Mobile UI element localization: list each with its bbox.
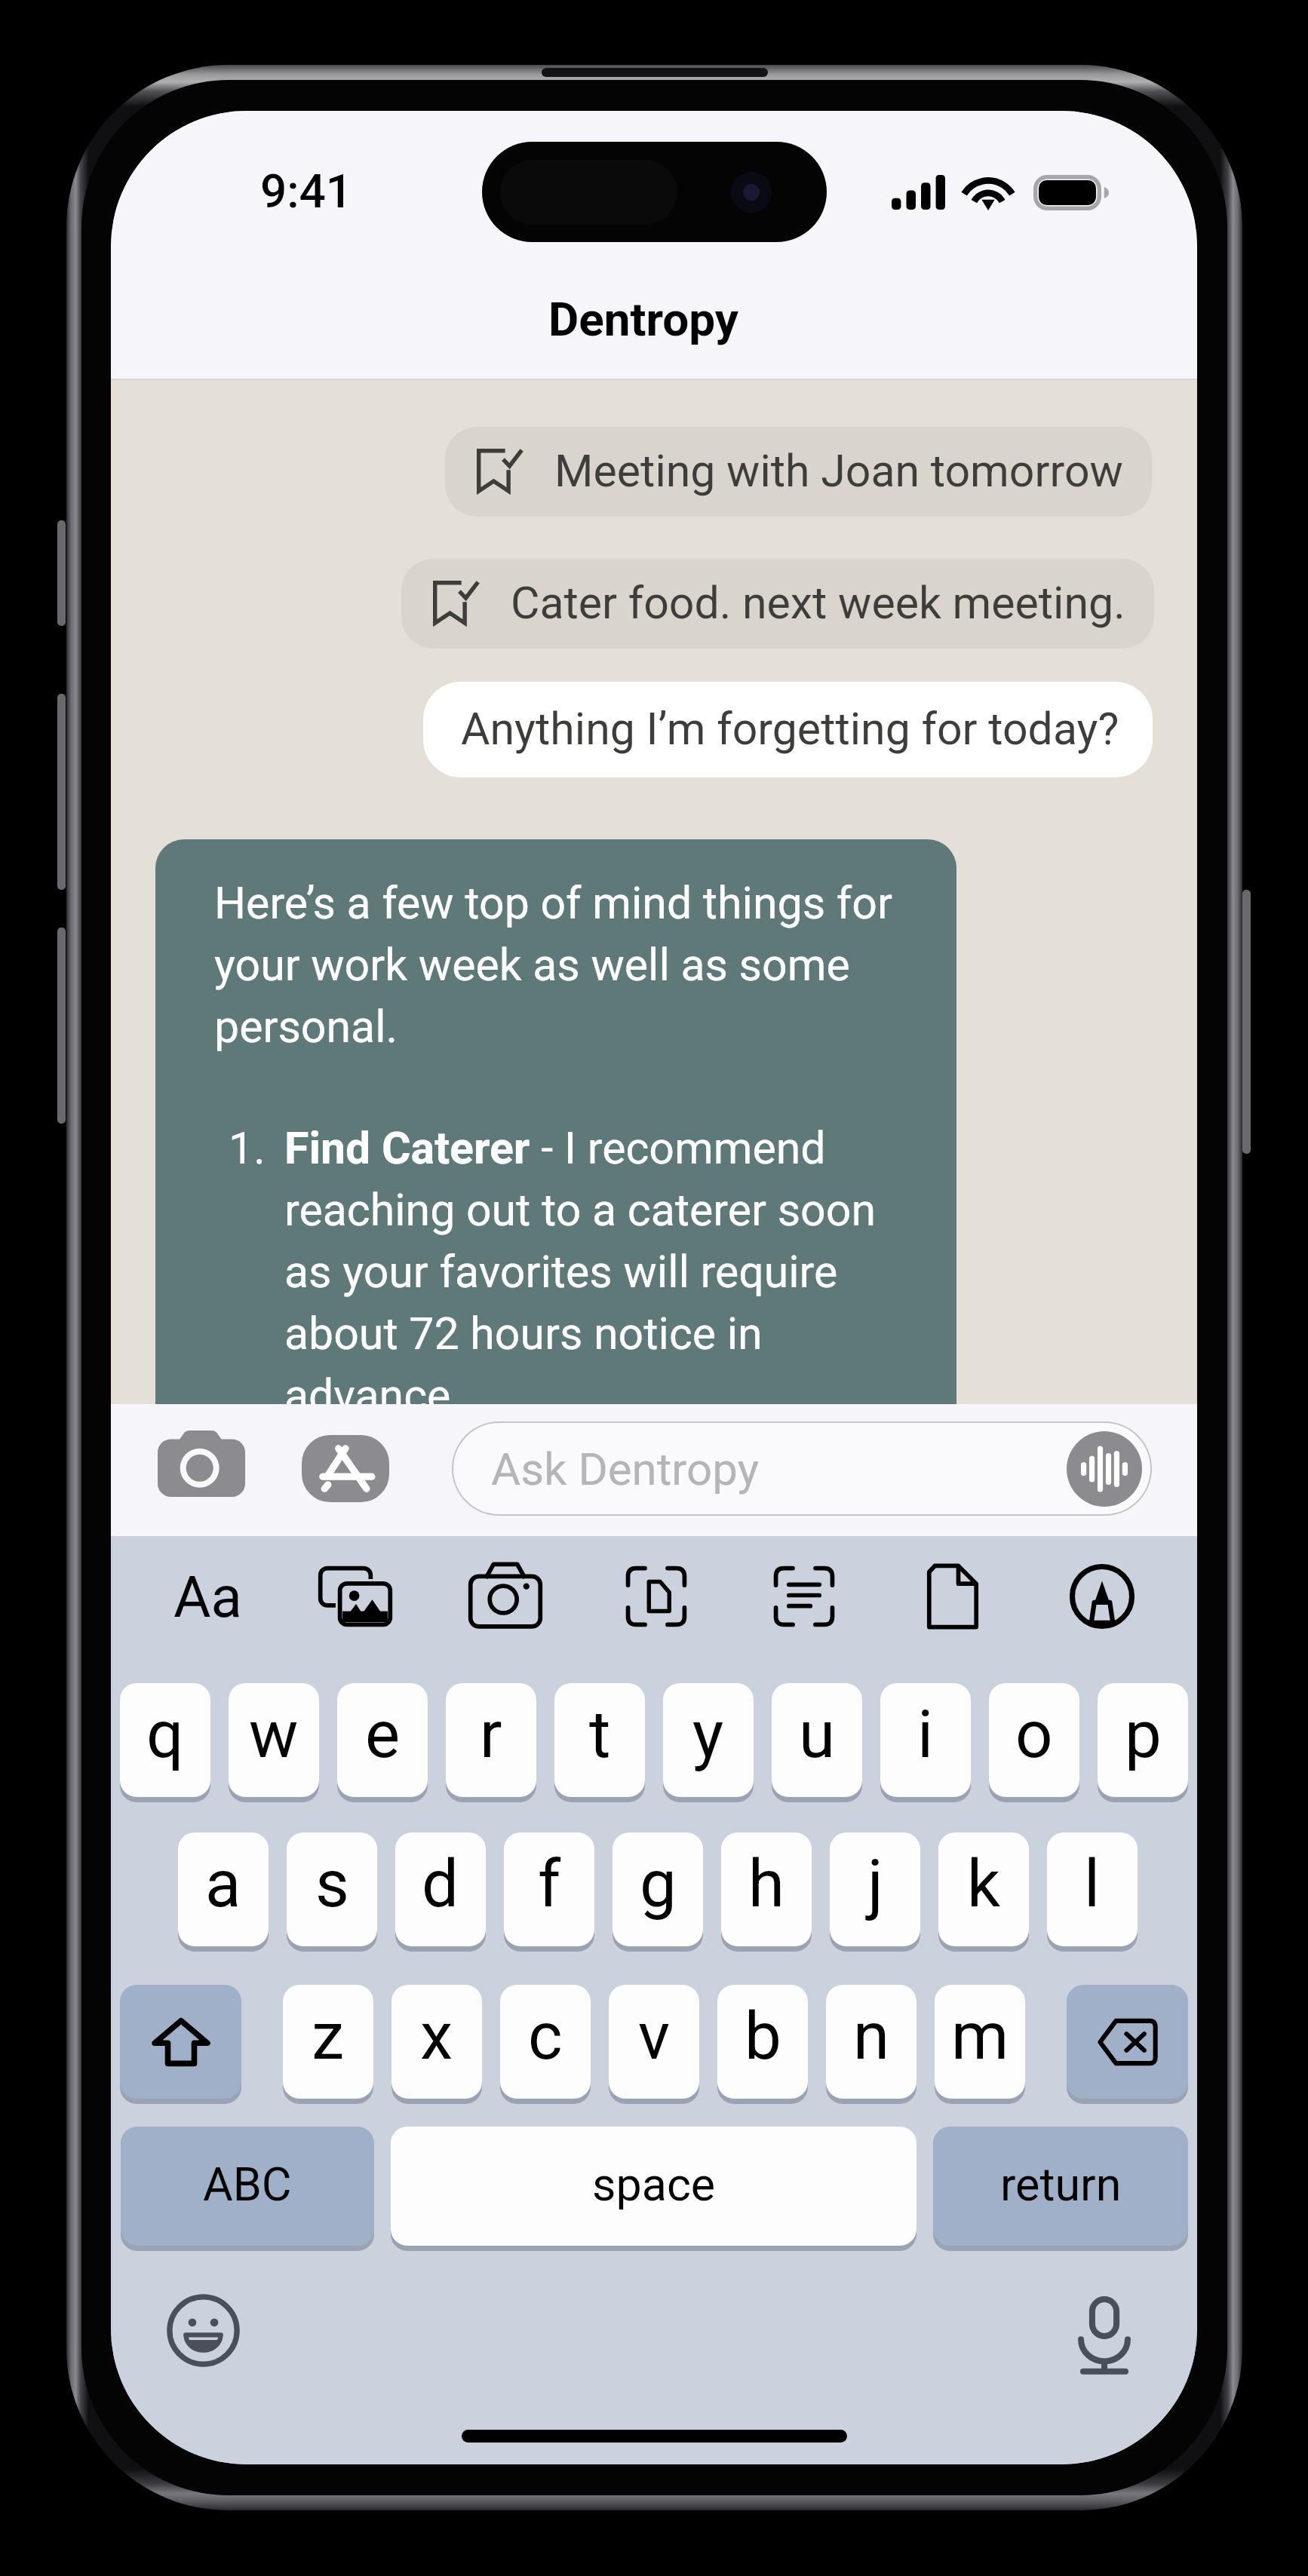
button[interactable]: v: [609, 1985, 699, 2099]
button[interactable]: Text format: [168, 1557, 247, 1636]
button[interactable]: j: [830, 1832, 920, 1946]
button[interactable]: Ask Dentropy: [452, 1421, 1152, 1516]
staticText: Meeting with Joan tomorrow: [554, 445, 1123, 497]
staticText: g: [640, 1845, 677, 1922]
staticText: h: [748, 1845, 784, 1922]
button[interactable]: x: [391, 1985, 482, 2099]
button[interactable]: Camera: [466, 1557, 545, 1636]
staticText: i: [917, 1696, 934, 1773]
button[interactable]: h: [721, 1832, 812, 1946]
staticText: 1.: [229, 1122, 284, 1174]
button[interactable]: p: [1098, 1683, 1188, 1797]
staticText: Cater food. next week meeting.: [511, 577, 1125, 629]
button[interactable]: s: [287, 1832, 377, 1946]
staticText: Anything I’m forgetting for today?: [461, 703, 1119, 755]
staticText: c: [528, 1998, 563, 2075]
staticText: r: [480, 1696, 502, 1773]
button[interactable]: Apps: [302, 1435, 389, 1502]
button[interactable]: a: [178, 1832, 269, 1946]
button[interactable]: space: [391, 2127, 917, 2246]
staticText: Find Caterer - I recommend reaching out …: [284, 1122, 919, 1421]
staticText: u: [799, 1696, 835, 1773]
staticText: f: [538, 1845, 561, 1922]
button[interactable]: Scan document: [617, 1557, 695, 1636]
staticText: t: [589, 1696, 611, 1773]
staticText: m: [951, 1998, 1009, 2075]
button[interactable]: u: [772, 1683, 862, 1797]
button[interactable]: b: [717, 1985, 808, 2099]
button[interactable]: Voice input: [1067, 1431, 1142, 1507]
staticText: Dentropy: [548, 292, 739, 347]
staticText: o: [1015, 1696, 1053, 1773]
staticText: w: [249, 1696, 299, 1773]
button[interactable]: Document: [913, 1557, 992, 1636]
staticText: ABC: [203, 2157, 292, 2211]
staticText: e: [365, 1696, 401, 1773]
button[interactable]: Anything I’m forgetting for today?: [423, 682, 1153, 777]
staticText: Ask Dentropy: [491, 1443, 760, 1495]
staticText: v: [638, 1998, 671, 2075]
button[interactable]: k: [938, 1832, 1029, 1946]
button[interactable]: Scan text: [765, 1557, 843, 1636]
button[interactable]: z: [283, 1985, 373, 2099]
staticText: p: [1125, 1696, 1162, 1773]
staticText: Here’s a few top of mind things for your…: [214, 877, 919, 1053]
button[interactable]: Here’s a few top of mind things for your…: [155, 839, 956, 1421]
button[interactable]: q: [120, 1683, 210, 1797]
button[interactable]: Dictate: [1078, 2296, 1131, 2375]
staticText: 9:41: [260, 164, 353, 219]
button[interactable]: c: [500, 1985, 591, 2099]
button[interactable]: i: [880, 1683, 971, 1797]
button[interactable]: y: [663, 1683, 754, 1797]
button[interactable]: Shift: [120, 1985, 241, 2099]
staticText: k: [967, 1845, 1001, 1922]
button[interactable]: Meeting with Joan tomorrow: [445, 427, 1152, 517]
button[interactable]: l: [1047, 1832, 1138, 1946]
staticText: j: [867, 1845, 883, 1922]
staticText: Aa: [173, 1563, 242, 1630]
staticText: a: [205, 1845, 241, 1922]
staticText: d: [422, 1845, 459, 1922]
button[interactable]: m: [935, 1985, 1025, 2099]
button[interactable]: t: [554, 1683, 645, 1797]
button[interactable]: ABC: [121, 2127, 374, 2246]
staticText: q: [146, 1696, 184, 1773]
button[interactable]: r: [446, 1683, 536, 1797]
staticText: l: [1084, 1845, 1101, 1922]
button[interactable]: e: [337, 1683, 428, 1797]
staticText: space: [592, 2157, 716, 2211]
button[interactable]: n: [826, 1985, 917, 2099]
staticText: b: [745, 1998, 781, 2075]
staticText: n: [853, 1998, 890, 2075]
button[interactable]: Camera: [158, 1431, 245, 1497]
button[interactable]: Markup: [1063, 1557, 1141, 1636]
button[interactable]: g: [613, 1832, 703, 1946]
button[interactable]: Backspace: [1067, 1985, 1188, 2099]
staticText: z: [312, 1998, 345, 2075]
button[interactable]: Emoji: [167, 2294, 240, 2367]
staticText: x: [420, 1998, 453, 2075]
button[interactable]: Cater food. next week meeting.: [401, 559, 1154, 649]
staticText: y: [692, 1696, 724, 1773]
button[interactable]: return: [933, 2127, 1188, 2246]
button[interactable]: d: [395, 1832, 486, 1946]
button[interactable]: f: [504, 1832, 594, 1946]
button[interactable]: Photos: [316, 1557, 395, 1636]
staticText: s: [315, 1845, 349, 1922]
button[interactable]: o: [989, 1683, 1079, 1797]
staticText: return: [1000, 2157, 1122, 2211]
button[interactable]: w: [229, 1683, 319, 1797]
